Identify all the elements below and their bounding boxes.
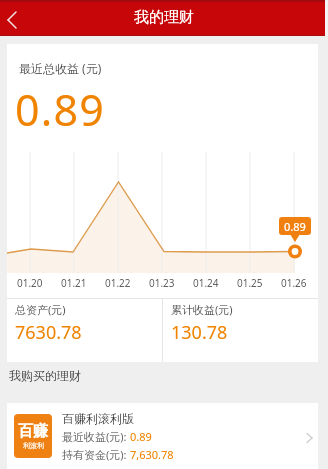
staticText: 7,630.78 xyxy=(130,447,174,462)
staticText: 7630.78 xyxy=(15,320,82,345)
staticText: 累计收益(元) xyxy=(171,302,233,317)
staticText: 总资产(元) xyxy=(15,302,66,317)
staticText: 最近收益(元): xyxy=(62,429,130,444)
staticText: 01.25 xyxy=(237,276,263,290)
staticText: 01.20 xyxy=(17,276,43,290)
staticText: 0.89 xyxy=(15,80,106,139)
staticText: 01.22 xyxy=(105,276,131,290)
staticText: 01.21 xyxy=(61,276,87,290)
button[interactable]: 百赚 xyxy=(7,403,318,469)
staticText: 百赚 xyxy=(18,422,48,441)
staticText: 我购买的理财 xyxy=(9,368,81,383)
button[interactable]: 我的理财 xyxy=(0,0,328,36)
staticText: 01.24 xyxy=(193,276,219,290)
staticText: 0.89 xyxy=(130,429,152,444)
staticText: 01.26 xyxy=(281,276,307,290)
staticText: 0.89 xyxy=(284,219,306,234)
staticText: 利滚利 xyxy=(23,441,44,450)
staticText: 最近总收益 (元) xyxy=(19,60,102,76)
staticText: 我的理财 xyxy=(134,8,194,27)
staticText: 130.78 xyxy=(171,320,228,345)
staticText: 01.23 xyxy=(149,276,175,290)
button[interactable] xyxy=(0,0,36,36)
staticText: 持有资金(元): xyxy=(62,447,130,462)
staticText: 百赚利滚利版 xyxy=(62,411,134,426)
